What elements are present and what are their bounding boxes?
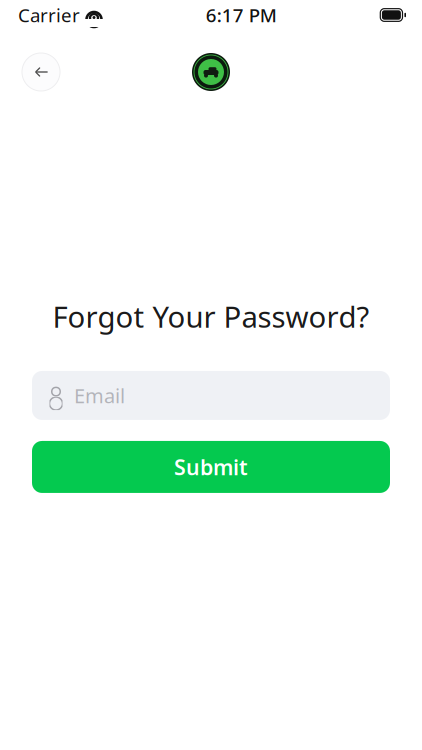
button[interactable]: Submit <box>32 441 390 493</box>
staticText: Forgot Your Password? <box>52 297 369 336</box>
staticText: 6:17 PM <box>206 3 277 27</box>
staticText: Submit <box>174 453 248 481</box>
staticText: Email <box>74 382 125 409</box>
button[interactable]: Back <box>22 53 60 91</box>
button[interactable]: Email <box>32 371 390 420</box>
staticText: Carrier <box>18 3 80 27</box>
